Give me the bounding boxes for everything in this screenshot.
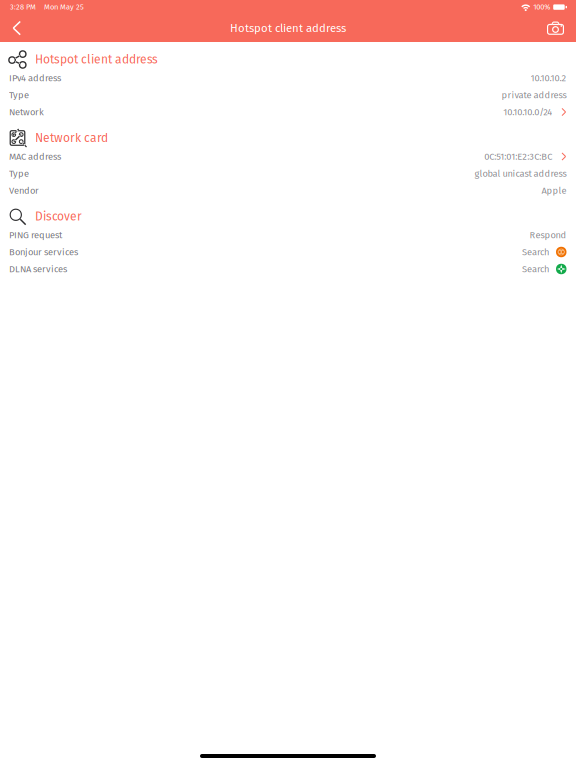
staticText: 0C:51:01:E2:3C:BC bbox=[484, 151, 552, 162]
staticText: Discover bbox=[35, 209, 82, 224]
button[interactable]: Network bbox=[0, 103, 576, 120]
staticText: private address bbox=[501, 89, 566, 101]
staticText: 10.10.10.2 bbox=[530, 72, 566, 84]
staticText: DLNA services bbox=[9, 263, 67, 275]
staticText: global unicast address bbox=[474, 168, 566, 179]
button[interactable]: Vendor bbox=[0, 182, 576, 199]
staticText: Hotspot client address bbox=[35, 52, 158, 67]
staticText: Bonjour services bbox=[9, 246, 78, 258]
button[interactable]: MAC address bbox=[0, 148, 576, 165]
button[interactable]: PING request bbox=[0, 226, 576, 243]
button[interactable]: DLNA services bbox=[0, 260, 576, 277]
staticText: Type bbox=[9, 89, 29, 101]
staticText: Vendor bbox=[9, 185, 39, 196]
staticText: 100% bbox=[533, 3, 550, 12]
staticText: Network card bbox=[35, 131, 108, 145]
button[interactable]: Take photo bbox=[541, 15, 570, 41]
staticText: Type bbox=[9, 168, 29, 179]
staticText: Respond bbox=[529, 229, 566, 241]
staticText: 10.10.10.0/24 bbox=[503, 106, 552, 118]
staticText: Network bbox=[9, 106, 44, 118]
button[interactable]: IPv4 address bbox=[0, 69, 576, 86]
staticText: Hotspot client address bbox=[230, 21, 346, 35]
button[interactable]: Type bbox=[0, 86, 576, 103]
staticText: 3:28 PM bbox=[10, 3, 36, 12]
staticText: Search bbox=[522, 263, 549, 275]
button[interactable]: Back bbox=[3, 15, 28, 41]
button[interactable]: Bonjour services bbox=[0, 243, 576, 260]
staticText: IPv4 address bbox=[9, 72, 61, 84]
button[interactable]: Type bbox=[0, 165, 576, 182]
staticText: PING request bbox=[9, 229, 62, 241]
staticText: Search bbox=[522, 246, 549, 258]
staticText: Mon May 25 bbox=[44, 3, 84, 12]
staticText: Apple bbox=[541, 185, 566, 196]
staticText: MAC address bbox=[9, 151, 61, 162]
